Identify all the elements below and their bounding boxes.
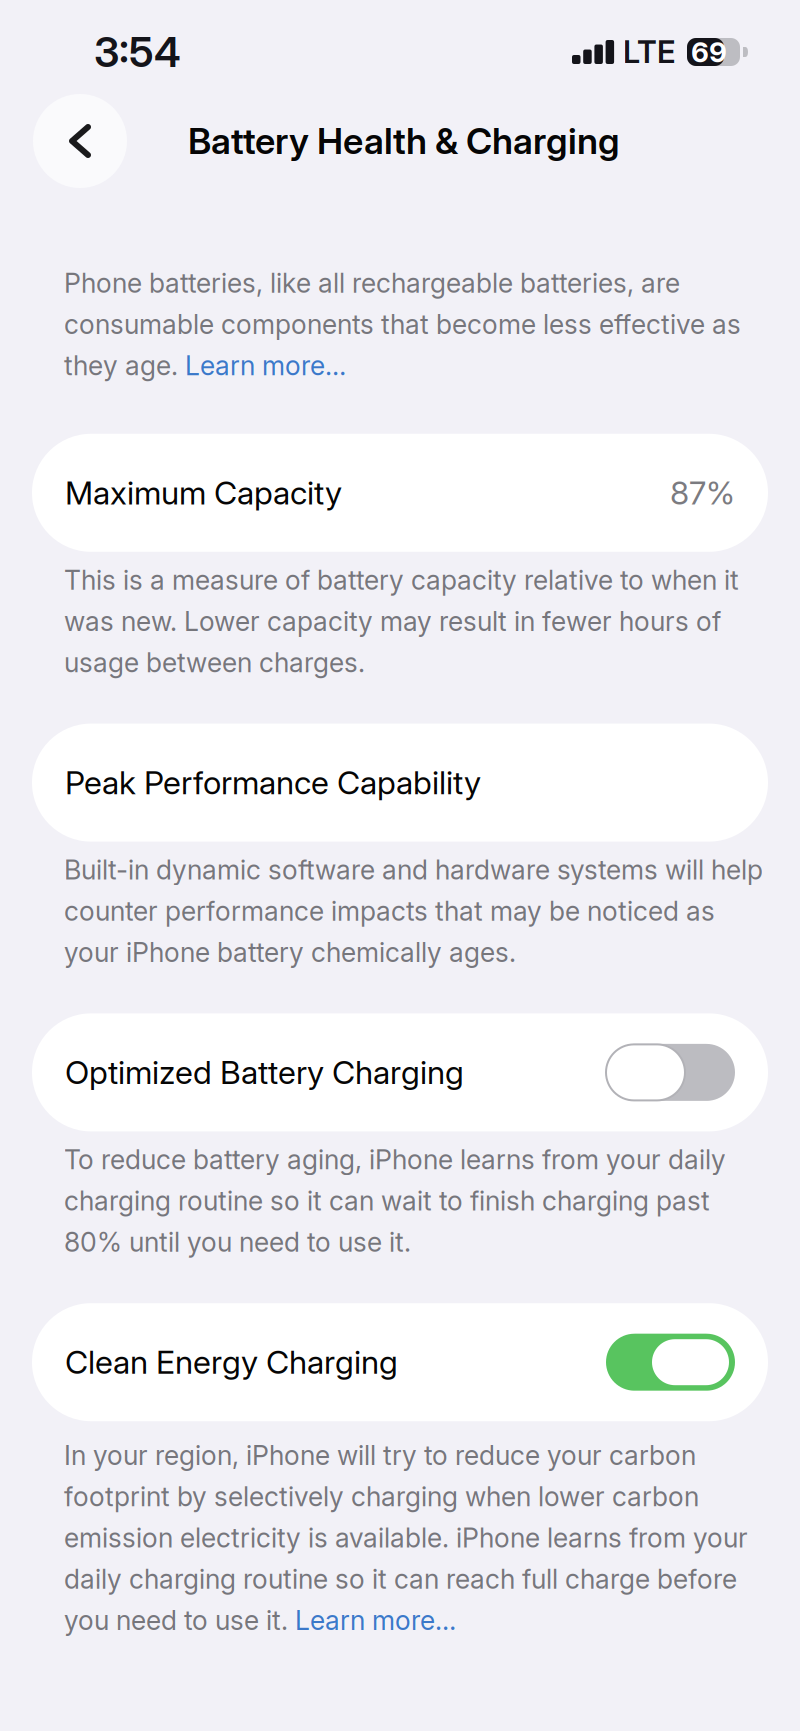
staticText: Optimized Battery Charging (65, 1053, 464, 1092)
staticText: counter performance impacts that may be … (64, 895, 715, 927)
button[interactable]: Clean Energy Charging (32, 1303, 768, 1421)
staticText: Battery Health & Charging (188, 119, 620, 163)
staticText: Learn more… (185, 349, 346, 382)
staticText: 87% (670, 473, 735, 512)
staticText: emission electricity is available. iPhon… (64, 1522, 748, 1554)
staticText: To reduce battery aging, iPhone learns f… (64, 1143, 726, 1176)
staticText: daily charging routine so it can reach f… (64, 1563, 737, 1595)
button[interactable]: Learn more… (185, 349, 346, 382)
staticText: LTE (623, 33, 675, 70)
staticText: 3:54 (94, 27, 181, 77)
staticText: In your region, iPhone will try to reduc… (64, 1439, 696, 1471)
staticText: usage between charges. (64, 646, 365, 679)
staticText: This is a measure of battery capacity re… (64, 564, 739, 596)
staticText: 69 (691, 35, 727, 69)
staticText: they age. (64, 349, 185, 382)
staticText: Phone batteries, like all rechargeable b… (64, 267, 680, 299)
staticText: your iPhone battery chemically ages. (64, 936, 516, 968)
staticText: Built-in dynamic software and hardware s… (64, 854, 763, 886)
staticText: 80% until you need to use it. (64, 1226, 411, 1258)
staticText: Maximum Capacity (65, 473, 342, 512)
button[interactable]: Back (33, 94, 127, 188)
staticText: footprint by selectively charging when l… (64, 1480, 699, 1513)
staticText: was new. Lower capacity may result in fe… (64, 605, 721, 637)
button[interactable]: Maximum Capacity (32, 434, 768, 552)
button[interactable]: Peak Performance Capability (32, 724, 768, 842)
staticText: Learn more… (295, 1604, 456, 1637)
staticText: Clean Energy Charging (65, 1343, 398, 1381)
staticText: Peak Performance Capability (65, 763, 481, 802)
staticText: consumable components that become less e… (64, 308, 741, 341)
staticText: charging routine so it can wait to finis… (64, 1185, 710, 1217)
button[interactable]: Optimized Battery Charging (32, 1013, 768, 1131)
staticText: you need to use it. (64, 1604, 295, 1637)
button[interactable]: Learn more… (295, 1604, 456, 1637)
